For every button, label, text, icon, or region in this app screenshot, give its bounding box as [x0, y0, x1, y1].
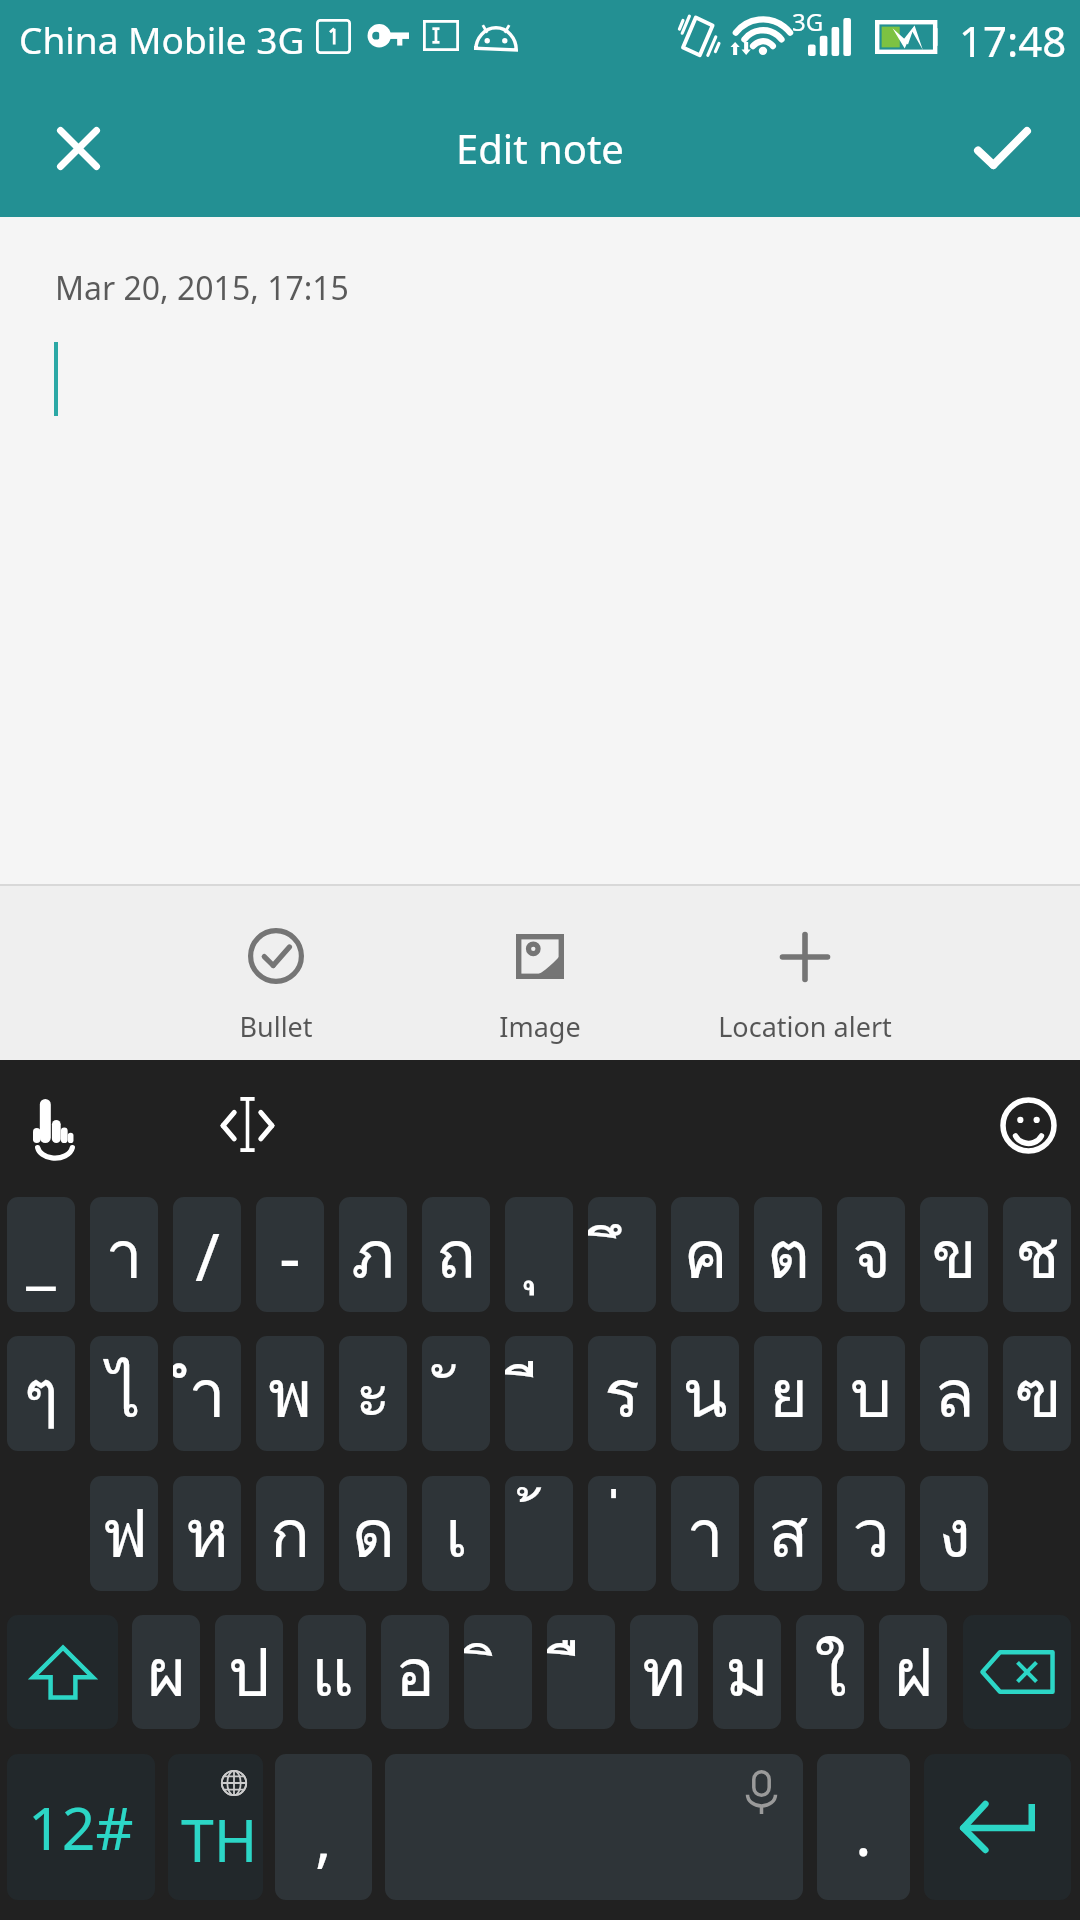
staticText: ผ [147, 1620, 186, 1725]
staticText: พ [268, 1341, 312, 1446]
button[interactable]: / [173, 1197, 241, 1312]
staticText: ค [683, 1202, 728, 1307]
staticText: 12# [28, 1787, 134, 1867]
button[interactable]: า [90, 1197, 158, 1312]
staticText: ท [642, 1620, 686, 1725]
staticText: ฟ [101, 1481, 148, 1586]
button[interactable]: ี [505, 1336, 573, 1451]
button[interactable]: Backspace [963, 1615, 1071, 1729]
button[interactable]: ่ [588, 1476, 656, 1591]
button[interactable]: ื [547, 1615, 615, 1729]
staticText: 3G [792, 5, 824, 38]
staticText: . [855, 1790, 872, 1874]
staticText: บ [850, 1341, 892, 1446]
button[interactable]: แ [298, 1615, 366, 1729]
staticText: เ [445, 1481, 468, 1586]
button[interactable]: Space [385, 1754, 803, 1900]
staticText: Image [499, 1008, 581, 1045]
button[interactable]: Close [24, 94, 132, 202]
staticText: ก [270, 1481, 310, 1586]
staticText: Bullet [239, 1008, 313, 1045]
staticText: TH [181, 1799, 258, 1879]
staticText: Location alert [718, 1008, 892, 1045]
button[interactable]: Bullet [146, 886, 406, 1060]
button[interactable]: ค [671, 1197, 739, 1312]
staticText: ไ [107, 1341, 141, 1446]
button[interactable]: Switch language [168, 1754, 263, 1900]
button[interactable]: อ [381, 1615, 449, 1729]
staticText: ง [938, 1481, 971, 1586]
button[interactable]: บ [837, 1336, 905, 1451]
button[interactable]: จ [837, 1197, 905, 1312]
button[interactable]: , [275, 1754, 372, 1900]
staticText: ภ [351, 1202, 395, 1307]
button[interactable]: ภ [339, 1197, 407, 1312]
staticText: า [686, 1481, 724, 1586]
button[interactable]: พ [256, 1336, 324, 1451]
button[interactable]: ุ [505, 1197, 573, 1312]
staticText: ร [604, 1341, 640, 1446]
button[interactable]: ท [630, 1615, 698, 1729]
button[interactable]: ข [920, 1197, 988, 1312]
button[interactable]: Emoji [986, 1083, 1070, 1173]
button[interactable]: ฟ [90, 1476, 158, 1591]
button[interactable]: ป [215, 1615, 283, 1729]
button[interactable]: ห [173, 1476, 241, 1591]
button[interactable]: ำ [173, 1336, 241, 1451]
staticText: อ [395, 1620, 435, 1725]
button[interactable]: ง [920, 1476, 988, 1591]
button[interactable]: ึ [588, 1197, 656, 1312]
staticText: 17:48 [959, 12, 1067, 69]
staticText: China Mobile 3G [19, 14, 305, 64]
button[interactable]: _ [7, 1197, 75, 1312]
staticText: ใ [814, 1620, 847, 1725]
staticText: ฝ [894, 1620, 933, 1725]
button[interactable]: ผ [132, 1615, 200, 1729]
staticText: ล [934, 1341, 975, 1446]
button[interactable]: ก [256, 1476, 324, 1591]
button[interactable]: ต [754, 1197, 822, 1312]
staticText: า [105, 1202, 143, 1307]
staticText: ว [852, 1481, 890, 1586]
button[interactable]: Handwriting [14, 1083, 96, 1173]
staticText: แ [311, 1620, 354, 1725]
button[interactable]: ส [754, 1476, 822, 1591]
button[interactable]: ๆ [7, 1336, 75, 1451]
button[interactable]: ล [920, 1336, 988, 1451]
staticText: ฃ [1014, 1341, 1061, 1446]
button[interactable]: ะ [339, 1336, 407, 1451]
button[interactable]: ด [339, 1476, 407, 1591]
button[interactable]: ว [837, 1476, 905, 1591]
button[interactable]: Location alert [675, 886, 935, 1060]
button[interactable]: า [671, 1476, 739, 1591]
button[interactable]: Image [410, 886, 670, 1060]
staticText: ข [931, 1202, 977, 1307]
button[interactable]: 12# [7, 1754, 155, 1900]
button[interactable]: ิ [464, 1615, 532, 1729]
staticText: ย [769, 1341, 808, 1446]
staticText: จ [852, 1202, 891, 1307]
button[interactable]: ฝ [879, 1615, 947, 1729]
button[interactable]: ฃ [1003, 1336, 1071, 1451]
button[interactable]: ช [1003, 1197, 1071, 1312]
staticText: ต [767, 1202, 810, 1307]
button[interactable]: Cursor control [207, 1082, 289, 1172]
button[interactable]: เ [422, 1476, 490, 1591]
button[interactable]: ใ [796, 1615, 864, 1729]
staticText: - [279, 1210, 301, 1300]
staticText: ม [725, 1620, 769, 1725]
button[interactable]: - [256, 1197, 324, 1312]
button[interactable]: Enter [924, 1754, 1071, 1900]
button[interactable]: ั [422, 1336, 490, 1451]
button[interactable]: ้ [505, 1476, 573, 1591]
button[interactable]: น [671, 1336, 739, 1451]
button[interactable]: ถ [422, 1197, 490, 1312]
button[interactable]: ไ [90, 1336, 158, 1451]
button[interactable]: . [817, 1754, 910, 1900]
button[interactable]: ย [754, 1336, 822, 1451]
staticText: Edit note [456, 121, 624, 175]
button[interactable]: ร [588, 1336, 656, 1451]
button[interactable]: Save [948, 94, 1056, 202]
button[interactable]: Shift [7, 1615, 118, 1729]
button[interactable]: ม [713, 1615, 781, 1729]
